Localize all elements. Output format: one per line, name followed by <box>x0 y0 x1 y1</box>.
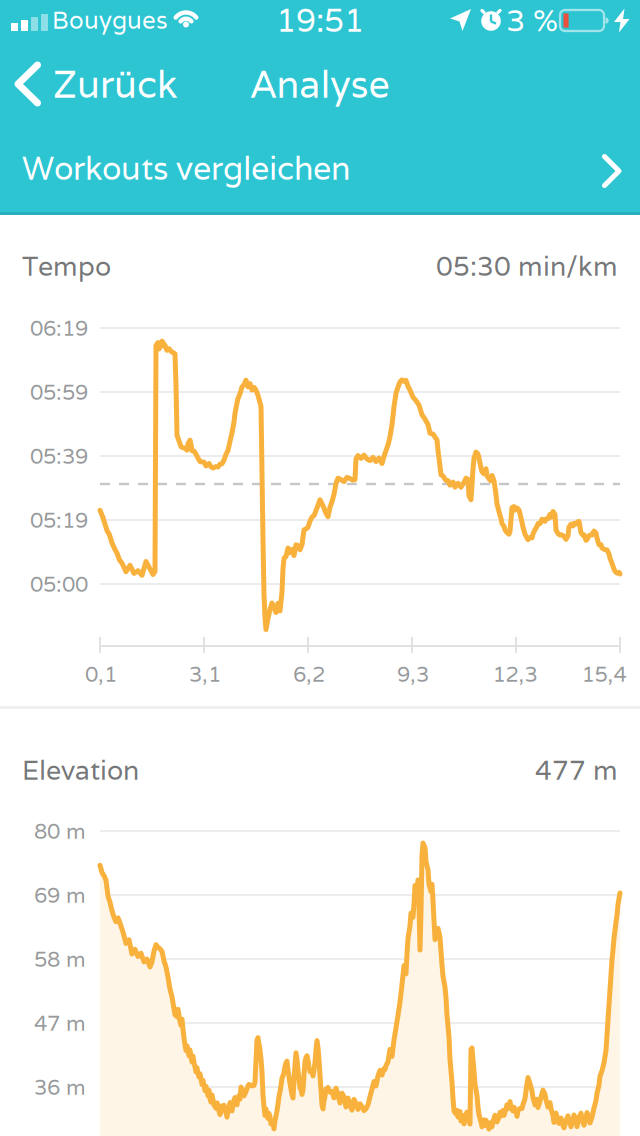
staticText: 47 m <box>34 1009 86 1037</box>
button[interactable]: Zurück <box>14 56 254 112</box>
staticText: Zurück <box>53 60 177 108</box>
staticText: 3,1 <box>189 660 221 688</box>
staticText: 12,3 <box>492 660 537 688</box>
staticText: 3 % <box>506 0 558 40</box>
staticText: 36 m <box>34 1073 86 1101</box>
staticText: 58 m <box>34 945 86 973</box>
staticText: 6,2 <box>293 660 325 688</box>
staticText: 05:59 <box>30 378 88 406</box>
staticText: Tempo <box>22 249 111 283</box>
staticText: 06:19 <box>30 314 88 342</box>
staticText: 9,3 <box>397 660 429 688</box>
staticText: Analyse <box>250 60 389 108</box>
staticText: Bouygues <box>52 4 168 36</box>
staticText: 05:30 min/km <box>436 249 618 283</box>
staticText: 80 m <box>34 817 86 845</box>
staticText: 05:39 <box>30 442 88 470</box>
staticText: 05:00 <box>30 570 88 598</box>
staticText: 0,1 <box>85 660 117 688</box>
staticText: Workouts vergleichen <box>22 147 350 189</box>
button[interactable]: Workouts vergleichen <box>0 133 640 203</box>
staticText: 19:51 <box>276 0 364 41</box>
staticText: 477 m <box>535 753 618 787</box>
staticText: Elevation <box>22 753 139 787</box>
staticText: 05:19 <box>30 506 88 534</box>
staticText: 15,4 <box>581 660 626 688</box>
staticText: 69 m <box>34 881 86 909</box>
